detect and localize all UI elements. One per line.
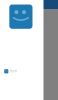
staticText: Item xyxy=(10,69,16,73)
